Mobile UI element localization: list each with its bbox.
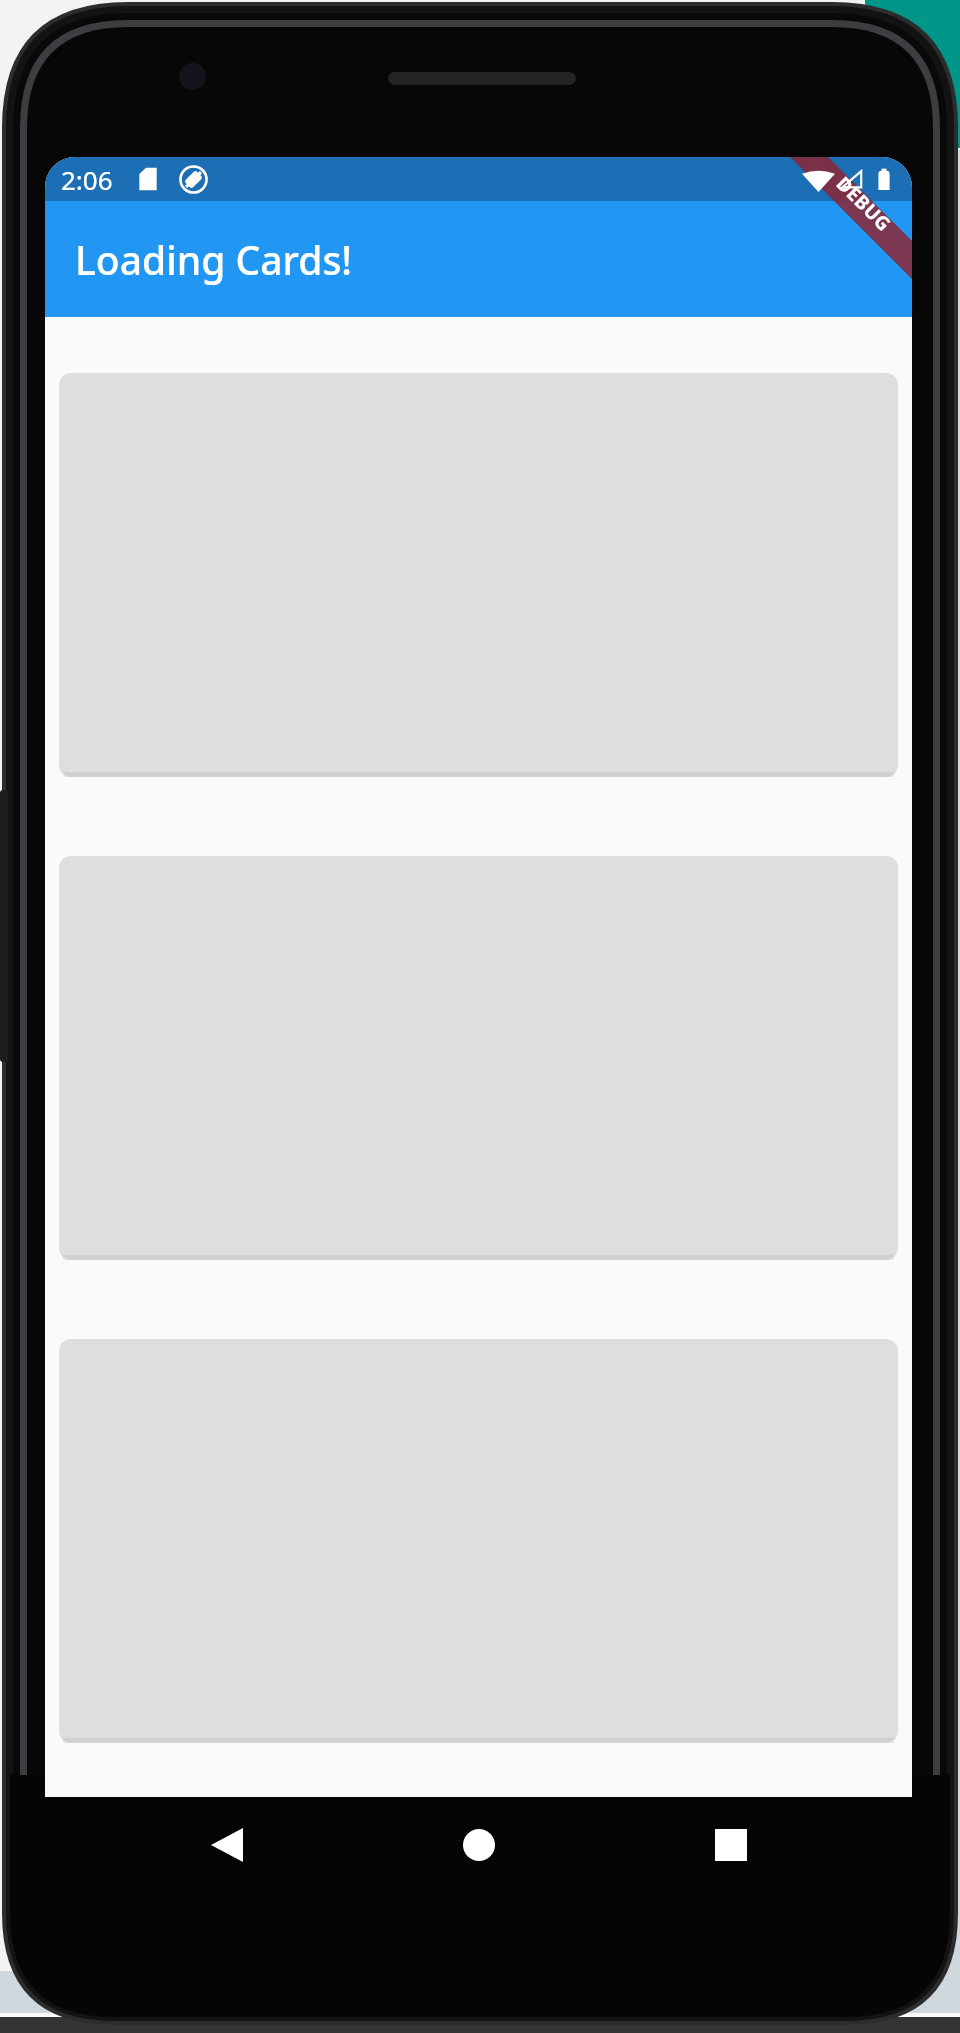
staticText: Loading Cards! bbox=[75, 233, 353, 286]
button[interactable]: Recent apps bbox=[701, 1797, 761, 1893]
staticText: 2:06 bbox=[61, 162, 113, 197]
button[interactable]: Home bbox=[449, 1797, 509, 1893]
button[interactable]: Back bbox=[197, 1797, 257, 1893]
staticText: DEBUG bbox=[831, 171, 897, 237]
